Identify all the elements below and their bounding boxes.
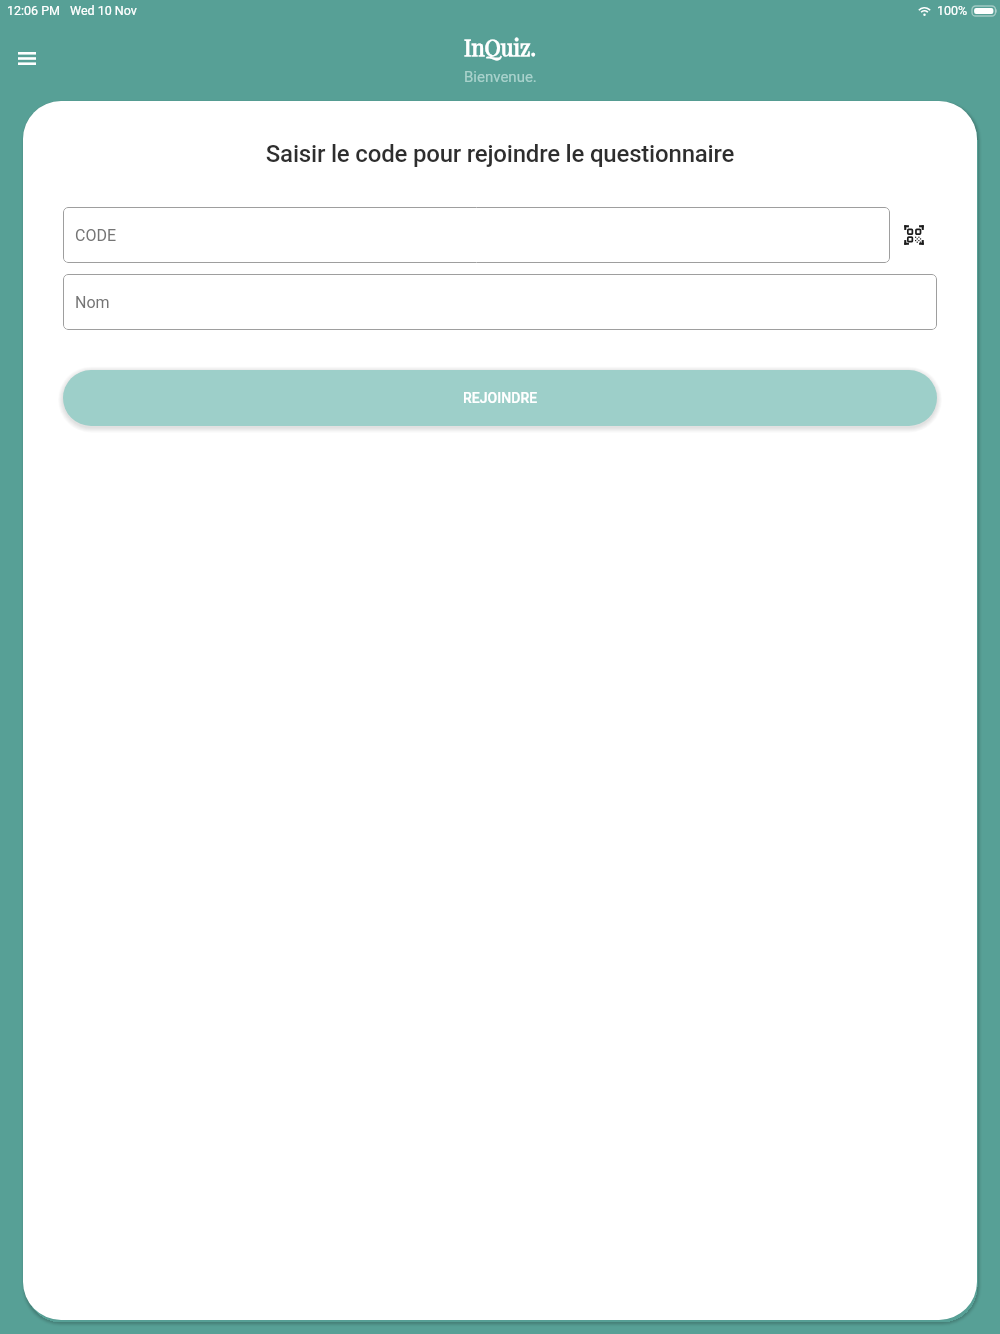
button[interactable]: Scan QR code — [890, 207, 937, 263]
staticText: Wed 10 Nov — [70, 3, 137, 18]
staticText: Bienvenue. — [464, 68, 537, 86]
staticText: REJOINDRE — [463, 390, 538, 406]
button[interactable]: REJOINDRE — [63, 370, 937, 426]
staticText: CODE — [75, 226, 117, 245]
button[interactable]: Menu — [7, 38, 47, 78]
button[interactable]: CODE — [63, 207, 890, 263]
staticText: Nom — [75, 293, 110, 312]
button[interactable]: Nom — [63, 274, 937, 330]
staticText: InQuiz. — [464, 32, 536, 61]
staticText: Saisir le code pour rejoindre le questio… — [23, 140, 977, 168]
staticText: 100% — [937, 3, 968, 18]
staticText: 12:06 PM — [7, 3, 61, 18]
